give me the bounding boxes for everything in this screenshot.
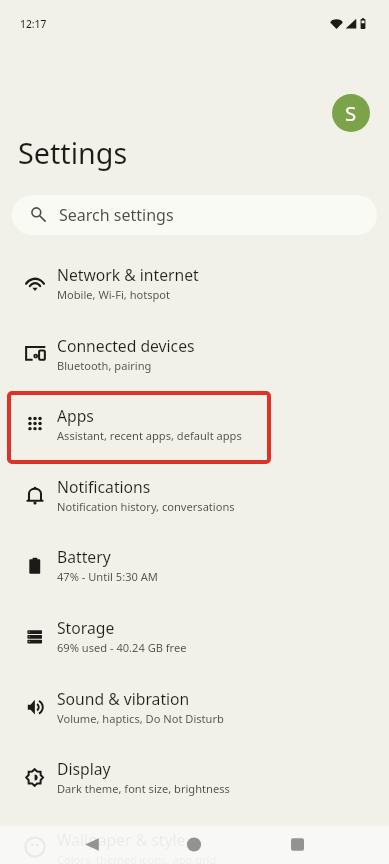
staticText: Mobile, Wi-Fi, hotspot — [57, 287, 171, 302]
staticText: Network & internet — [57, 264, 199, 285]
staticText: S — [345, 99, 357, 127]
staticText: Display — [57, 758, 111, 779]
button[interactable]: Sound & vibration — [0, 679, 389, 749]
staticText: Dark theme, font size, brightness — [57, 781, 230, 796]
staticText: Storage — [57, 617, 115, 638]
staticText: Settings — [18, 133, 128, 172]
staticText: Wallpaper & style — [57, 829, 186, 850]
button[interactable]: Home — [170, 826, 218, 864]
staticText: Colors, themed icons, app grid — [57, 852, 217, 864]
staticText: Bluetooth, pairing — [57, 358, 152, 373]
staticText: Search settings — [59, 204, 174, 226]
staticText: Assistant, recent apps, default apps — [57, 428, 242, 443]
button[interactable]: Account — [332, 94, 370, 132]
button[interactable]: Display — [0, 749, 389, 819]
staticText: Notifications — [57, 476, 151, 497]
button[interactable]: Recent apps — [273, 826, 321, 864]
staticText: 12:17 — [20, 17, 47, 31]
staticText: Volume, haptics, Do Not Disturb — [57, 711, 224, 726]
button[interactable]: Network & internet — [0, 255, 389, 325]
button[interactable]: Search settings — [12, 195, 377, 235]
staticText: Battery — [57, 546, 111, 567]
button[interactable]: Apps — [0, 396, 389, 466]
staticText: 69% used - 40.24 GB free — [57, 640, 187, 655]
button[interactable]: Battery — [0, 537, 389, 607]
staticText: Notification history, conversations — [57, 499, 235, 514]
button[interactable]: Connected devices — [0, 326, 389, 396]
button[interactable]: Back — [68, 826, 116, 864]
staticText: Apps — [57, 405, 94, 426]
staticText: 47% - Until 5:30 AM — [57, 569, 158, 584]
staticText: Sound & vibration — [57, 688, 190, 709]
button[interactable]: Wallpaper & style — [0, 820, 389, 864]
button[interactable]: Storage — [0, 608, 389, 678]
staticText: Connected devices — [57, 335, 195, 356]
button[interactable]: Notifications — [0, 467, 389, 537]
